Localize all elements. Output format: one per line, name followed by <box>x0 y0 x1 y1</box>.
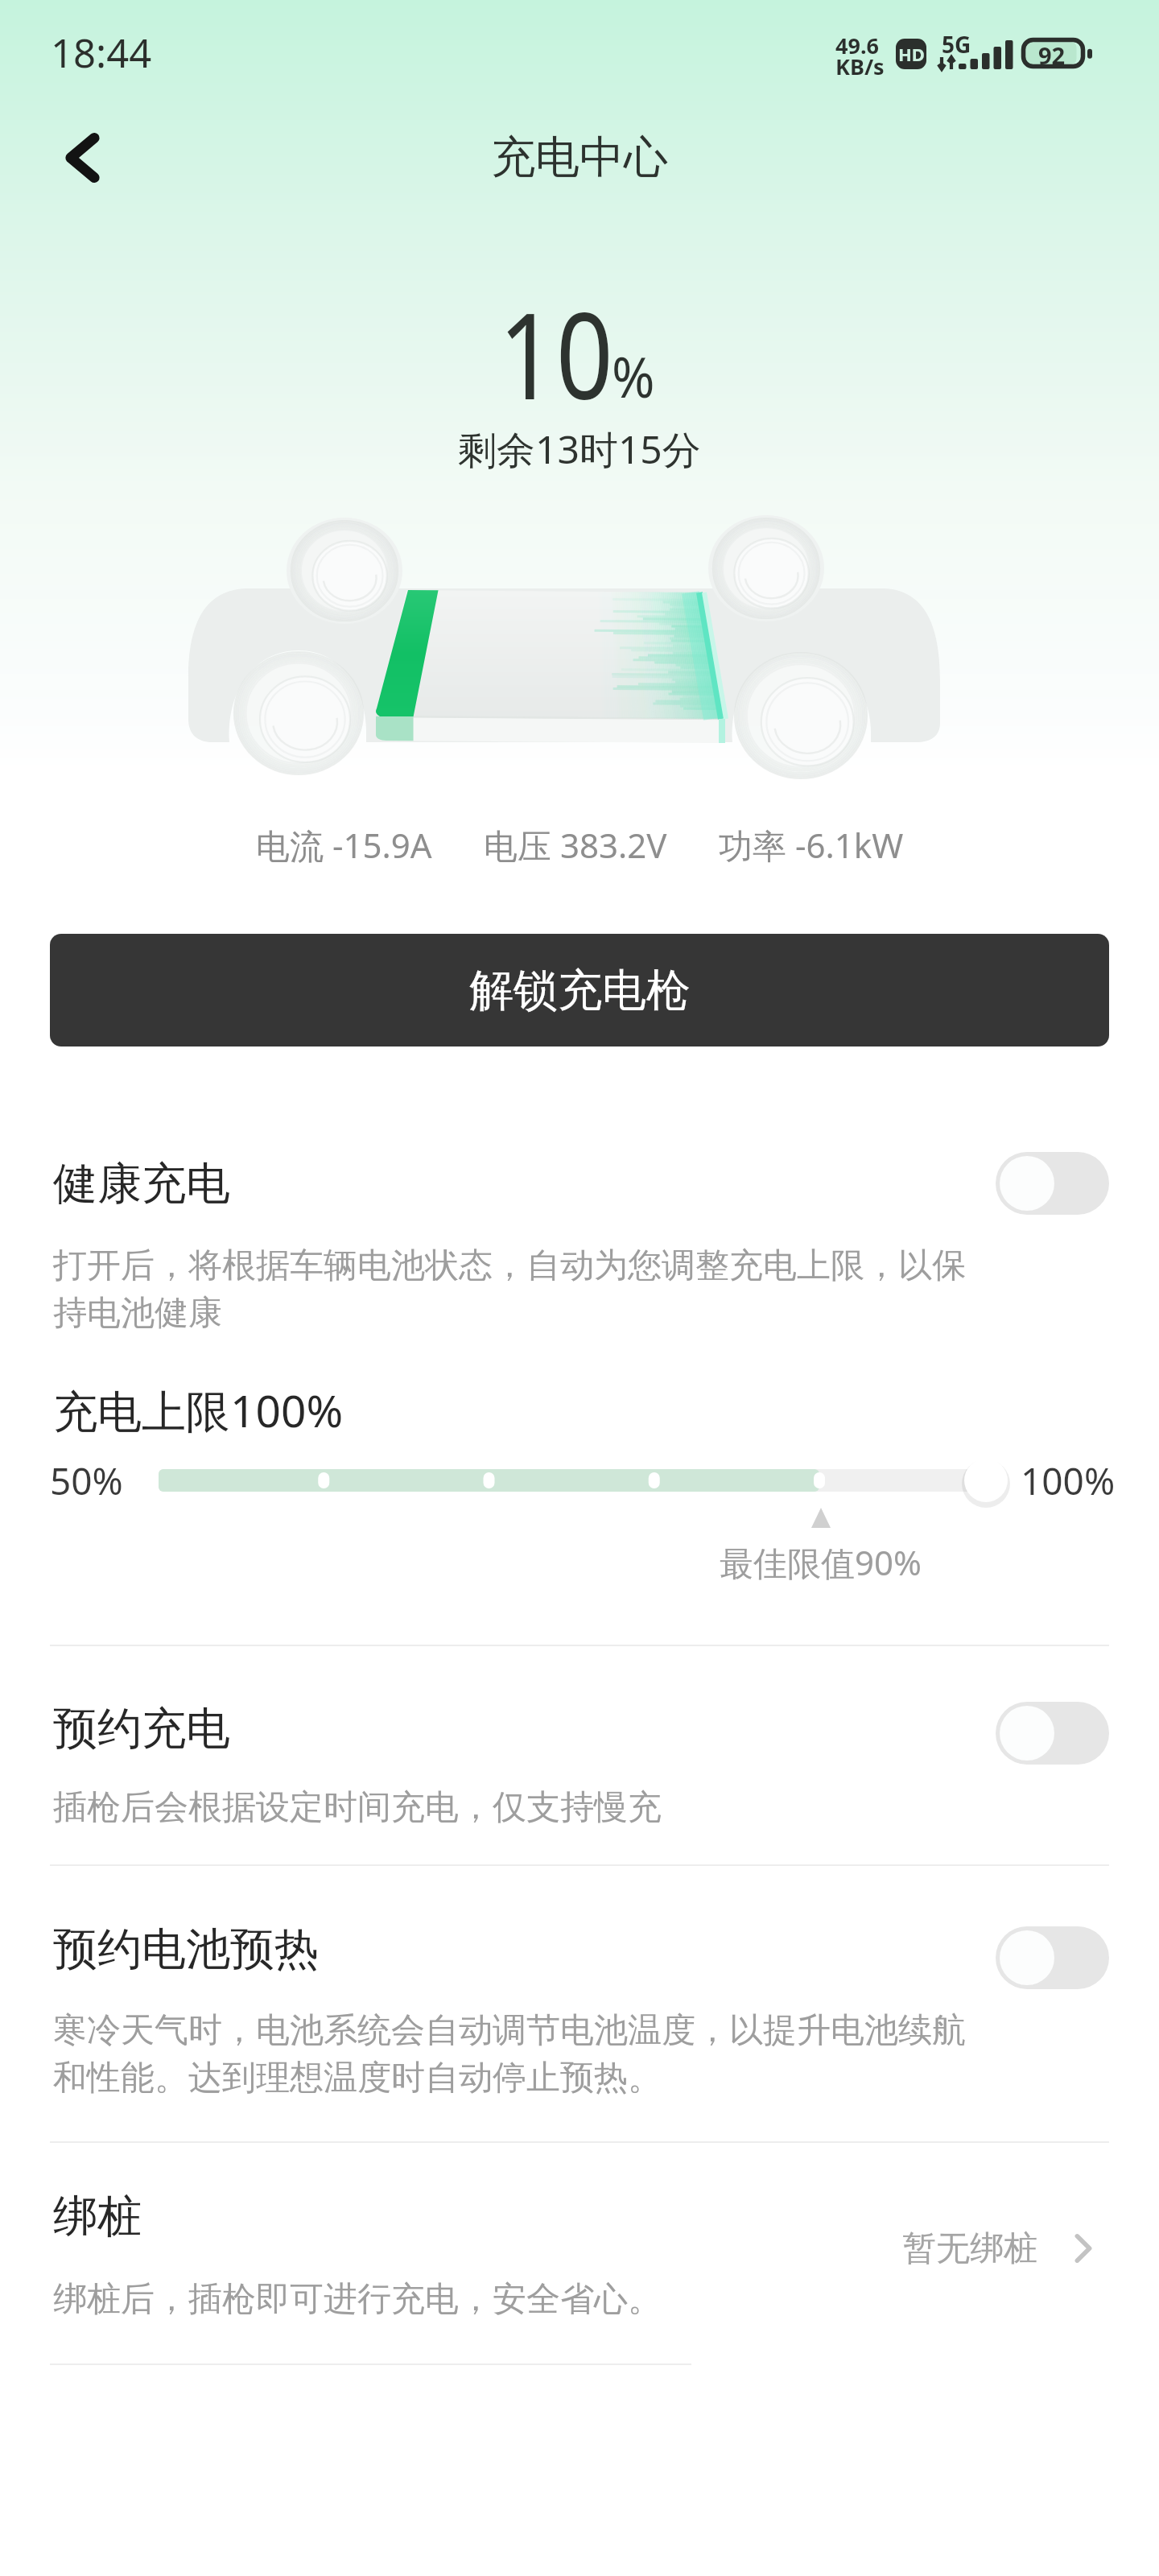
staticText: 100% <box>1021 1455 1116 1506</box>
staticText: 92 <box>1038 39 1066 70</box>
staticText: 电压 383.2V <box>484 822 667 868</box>
staticText: 预约电池预热 <box>53 1922 319 1977</box>
staticText: % <box>612 337 655 414</box>
staticText: KB/s <box>835 52 885 81</box>
staticText: 插枪后会根据设定时间充电，仅支持慢充 <box>53 1786 662 1829</box>
staticText: 健康充电 <box>53 1156 230 1212</box>
button[interactable]: 解锁充电枪 <box>50 934 1109 1046</box>
button[interactable]: 绑桩 <box>50 2165 1109 2359</box>
staticText: 寒冷天气时，电池系统会自动调节电池温度，以提升电池续航和性能。达到理想温度时自动… <box>53 2009 979 2099</box>
staticText: 打开后，将根据车辆电池状态，自动为您调整充电上限，以保持电池健康 <box>53 1245 979 1335</box>
button[interactable]: Back <box>35 111 129 204</box>
staticText: 50% <box>50 1455 123 1506</box>
button[interactable]: 预约充电 <box>50 1666 1109 1851</box>
staticText: HD <box>898 42 925 66</box>
staticText: 暂无绑桩 <box>902 2227 1037 2270</box>
staticText: 解锁充电枪 <box>469 963 691 1018</box>
staticText: 5G <box>942 29 971 60</box>
staticText: 最佳限值90% <box>720 1539 922 1585</box>
staticText: 功率 -6.1kW <box>719 822 904 868</box>
staticText: 预约充电 <box>53 1701 230 1757</box>
button[interactable]: Toggle <box>996 1152 1109 1215</box>
staticText: 49.6 <box>835 31 879 60</box>
button[interactable]: Toggle <box>996 1702 1109 1765</box>
button[interactable]: Toggle <box>996 1926 1109 1989</box>
button[interactable]: 健康充电 <box>50 1119 1109 1344</box>
staticText: 绑桩后，插枪即可进行充电，安全省心。 <box>53 2278 662 2321</box>
staticText: 18:44 <box>51 26 152 80</box>
staticText: 充电上限100% <box>53 1380 344 1440</box>
staticText: 电流 -15.9A <box>256 822 432 868</box>
button[interactable]: 预约电池预热 <box>50 1892 1109 2125</box>
staticText: 充电中心 <box>491 130 668 185</box>
staticText: 剩余13时15分 <box>458 423 701 476</box>
staticText: 绑桩 <box>53 2189 142 2244</box>
button[interactable]: 暂无绑桩 <box>902 2223 1093 2273</box>
staticText: 10 <box>499 272 614 435</box>
